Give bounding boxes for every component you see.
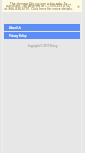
staticText: ✕	[77, 5, 81, 9]
staticText: About Us	[9, 26, 21, 30]
staticText: Privacy Policy	[9, 34, 27, 38]
button[interactable]: About Us	[4, 24, 80, 31]
button[interactable]: Close banner	[76, 4, 81, 9]
staticText: Copyright © 2017 Shi-xg	[0, 44, 85, 48]
staticText: The domain Shi-xg.com is for sale. To pu…	[2, 1, 75, 11]
button[interactable]: Privacy Policy	[4, 32, 80, 39]
